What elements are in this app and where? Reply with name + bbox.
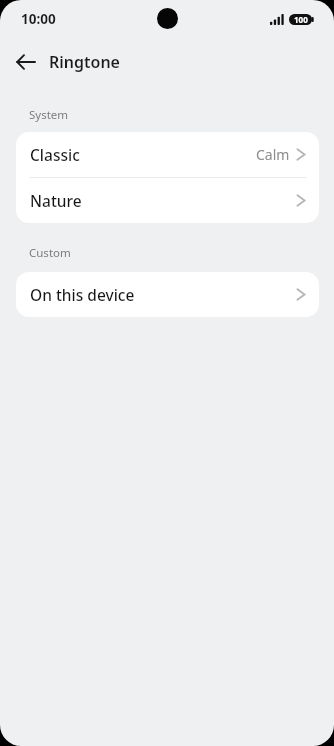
button[interactable]: Classic <box>16 132 319 177</box>
button[interactable]: Nature <box>16 178 319 223</box>
staticText: System <box>29 107 69 123</box>
staticText: Calm <box>256 145 290 164</box>
staticText: 100 <box>294 14 308 25</box>
staticText: 10:00 <box>21 10 56 28</box>
staticText: On this device <box>30 284 135 305</box>
button[interactable] <box>10 46 42 78</box>
staticText: Custom <box>29 245 71 261</box>
staticText: Classic <box>30 144 80 165</box>
button[interactable]: On this device <box>16 272 319 317</box>
staticText: Nature <box>30 190 82 211</box>
staticText: Ringtone <box>49 51 120 73</box>
